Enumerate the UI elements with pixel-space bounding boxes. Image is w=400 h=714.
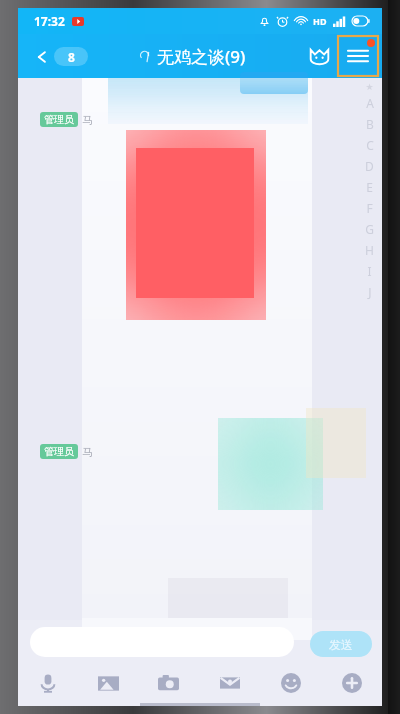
button[interactable]: 管理员 bbox=[40, 112, 93, 127]
staticText: 管理员 bbox=[44, 445, 74, 458]
staticText: ★ bbox=[365, 82, 374, 92]
button[interactable]: Group mascot bbox=[302, 39, 336, 73]
button[interactable]: Emoji bbox=[260, 664, 321, 702]
staticText: I bbox=[367, 263, 372, 279]
staticText: 无鸡之谈(9) bbox=[157, 45, 246, 68]
staticText: 马 bbox=[82, 445, 93, 459]
staticText: 8 bbox=[68, 49, 75, 65]
button[interactable]: Gift bbox=[199, 664, 260, 702]
staticText: H bbox=[365, 242, 374, 258]
staticText: A bbox=[366, 95, 374, 111]
staticText: B bbox=[366, 116, 374, 132]
staticText: 马 bbox=[82, 113, 93, 127]
button[interactable]: Photos bbox=[78, 664, 138, 702]
staticText: 17:32 bbox=[34, 13, 65, 29]
staticText: 发送 bbox=[329, 637, 353, 652]
staticText: F bbox=[366, 200, 373, 216]
button[interactable]: Back, 8 unread bbox=[28, 43, 94, 70]
staticText: E bbox=[366, 179, 373, 195]
button[interactable]: More bbox=[321, 664, 382, 702]
staticText: C bbox=[366, 137, 374, 153]
staticText: D bbox=[365, 158, 374, 174]
button[interactable]: Camera bbox=[138, 664, 199, 702]
staticText: HD bbox=[313, 15, 327, 27]
staticText: J bbox=[368, 284, 372, 300]
staticText: G bbox=[365, 221, 374, 237]
staticText: 管理员 bbox=[44, 113, 74, 126]
button[interactable]: Voice message bbox=[18, 664, 78, 702]
button[interactable]: Menu bbox=[338, 36, 378, 76]
button[interactable]: 发送 bbox=[310, 631, 372, 657]
button[interactable]: 管理员 bbox=[40, 444, 93, 459]
